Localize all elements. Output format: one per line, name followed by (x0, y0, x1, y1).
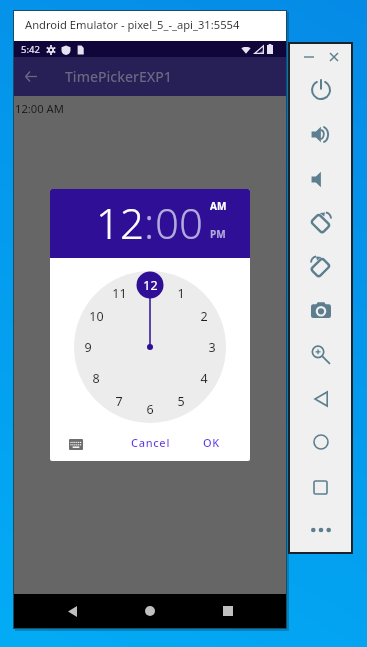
staticText: 2 (200, 308, 208, 325)
button[interactable]: Cancel (129, 429, 173, 455)
button[interactable]: 4 (191, 368, 217, 388)
button[interactable]: Power (290, 70, 351, 110)
button[interactable]: 9 (75, 337, 101, 357)
button[interactable]: Volume up (290, 114, 351, 154)
button[interactable]: More (290, 510, 351, 550)
button[interactable]: 11 (106, 283, 132, 303)
button[interactable]: Back (290, 379, 351, 419)
staticText: 1 (177, 285, 185, 302)
staticText: Android Emulator - pixel_5_-_api_31:5554 (25, 17, 240, 32)
button[interactable]: 12 (137, 275, 163, 295)
staticText: 12 (143, 277, 158, 294)
staticText: : (144, 194, 155, 251)
button[interactable]: Zoom (290, 334, 351, 374)
button[interactable]: 00 (155, 194, 203, 251)
button[interactable]: Home (290, 422, 351, 462)
button[interactable]: 6 (137, 399, 163, 419)
button[interactable]: Overview (290, 467, 351, 507)
button[interactable]: Close (325, 48, 343, 66)
button[interactable]: 8 (83, 368, 109, 388)
button[interactable]: 12 (96, 194, 144, 251)
button[interactable]: Rotate left (290, 202, 351, 242)
button[interactable]: Back (14, 57, 48, 96)
button[interactable]: 5 (168, 391, 194, 411)
button[interactable]: Volume down (290, 159, 351, 199)
button[interactable]: 10 (83, 306, 109, 326)
staticText: 8 (92, 370, 100, 387)
staticText: 11 (112, 285, 127, 302)
staticText: AM (210, 199, 227, 213)
staticText: 3 (208, 339, 216, 356)
button[interactable]: Switch to text input (64, 433, 88, 455)
button[interactable]: Home (136, 597, 164, 625)
button[interactable]: 3 (199, 337, 225, 357)
staticText: Cancel (131, 435, 171, 450)
staticText: 4 (200, 370, 208, 387)
button[interactable]: 7 (106, 391, 132, 411)
button[interactable]: Minimize (300, 48, 318, 66)
button[interactable]: OK (193, 429, 229, 455)
staticText: 6 (146, 401, 154, 418)
button[interactable]: PM (210, 227, 232, 241)
staticText: OK (203, 435, 220, 450)
button[interactable]: Rotate right (290, 246, 351, 286)
staticText: 9 (84, 339, 92, 356)
staticText: 7 (115, 393, 123, 410)
staticText: 5 (177, 393, 185, 410)
button[interactable]: AM (210, 199, 232, 213)
button[interactable]: 1 (168, 283, 194, 303)
button[interactable]: Recents (214, 597, 242, 625)
staticText: 12:00 AM (15, 101, 64, 116)
staticText: 10 (89, 308, 104, 325)
staticText: PM (210, 227, 226, 241)
button[interactable]: 2 (191, 306, 217, 326)
button[interactable]: Take screenshot (290, 290, 351, 330)
button[interactable]: Back (58, 597, 86, 625)
staticText: 5:42 (21, 43, 40, 56)
staticText: TimePickerEXP1 (65, 67, 172, 86)
